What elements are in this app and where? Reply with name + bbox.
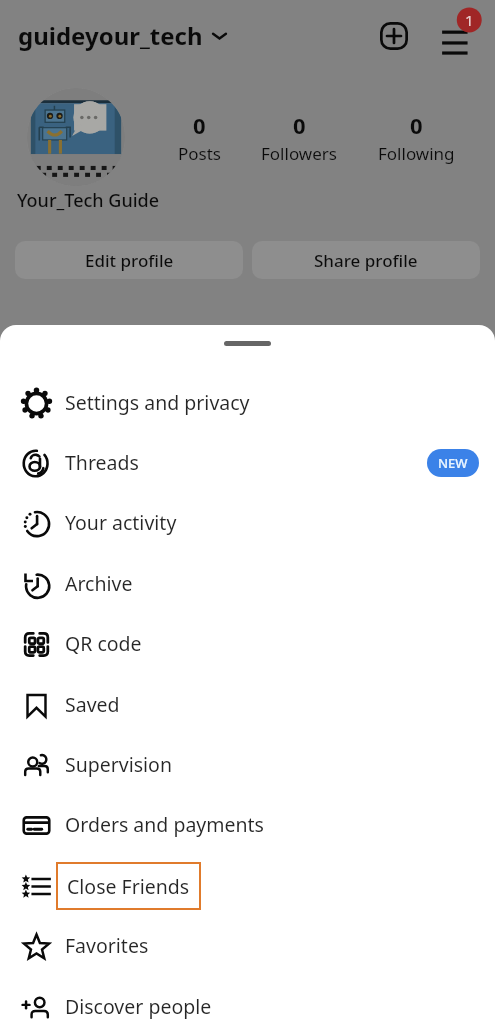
button[interactable]: Orders and payments [0, 794, 495, 855]
staticText: Discover people [65, 993, 212, 1020]
staticText: Settings and privacy [65, 389, 250, 416]
staticText: Followers [261, 142, 337, 165]
button[interactable]: Archive [0, 553, 495, 614]
staticText: 0 [410, 110, 423, 140]
staticText: Saved [65, 691, 120, 718]
button[interactable]: Supervision [0, 734, 495, 795]
button[interactable]: 0 [261, 110, 337, 165]
button[interactable]: Threads [0, 432, 495, 493]
staticText: Close Friends [67, 873, 190, 900]
staticText: QR code [65, 630, 142, 657]
staticText: 0 [193, 110, 206, 140]
button[interactable]: 0 [378, 110, 455, 165]
staticText: Edit profile [85, 249, 174, 272]
button[interactable]: Edit profile [15, 241, 243, 279]
staticText: Following [378, 142, 455, 165]
button[interactable]: Share profile [252, 241, 480, 279]
button[interactable]: Your activity [0, 492, 495, 553]
staticText: Share profile [314, 249, 418, 272]
button[interactable]: New post [372, 14, 416, 58]
button[interactable]: Favorites [0, 915, 495, 976]
button[interactable] [27, 88, 125, 186]
staticText: NEW [438, 454, 468, 472]
staticText: Supervision [65, 751, 172, 778]
button[interactable]: Close Friends [0, 855, 495, 916]
staticText: Archive [65, 570, 133, 597]
button[interactable]: guideyour_tech [18, 19, 228, 52]
staticText: Your_Tech Guide [17, 188, 160, 213]
staticText: Favorites [65, 932, 149, 959]
staticText: guideyour_tech [18, 19, 203, 52]
staticText: Orders and payments [65, 811, 264, 838]
staticText: Posts [178, 142, 221, 165]
staticText: Your activity [65, 509, 177, 536]
staticText: Threads [65, 449, 139, 476]
button[interactable]: Settings and privacy [0, 372, 495, 433]
button[interactable]: 0 [178, 110, 221, 165]
staticText: 0 [293, 110, 306, 140]
button[interactable]: Saved [0, 674, 495, 735]
staticText: 1 [465, 10, 474, 30]
button[interactable]: Discover people [0, 976, 495, 1024]
button[interactable]: Menu [433, 12, 481, 60]
button[interactable]: QR code [0, 613, 495, 674]
